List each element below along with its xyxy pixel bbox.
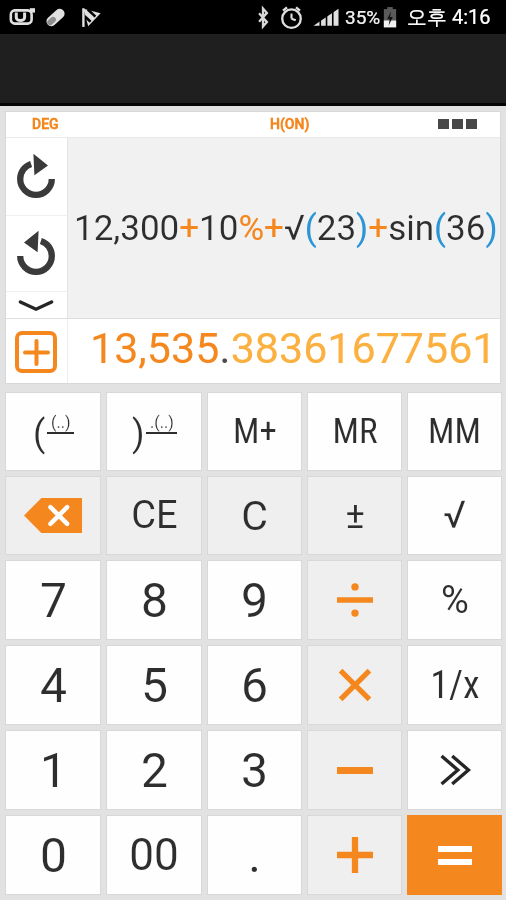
button[interactable]: CE	[106, 476, 202, 555]
button[interactable]: 3	[207, 730, 302, 810]
staticText: 35%	[345, 6, 381, 28]
button[interactable]	[307, 815, 402, 895]
staticText: 7	[40, 572, 67, 628]
staticText: 00	[129, 829, 179, 881]
button[interactable]: Undo	[5, 216, 67, 291]
button[interactable]: 1/x	[407, 645, 502, 725]
staticText: √	[443, 493, 466, 538]
staticText: %	[441, 578, 469, 623]
button[interactable]	[407, 730, 502, 810]
button[interactable]: 9	[207, 560, 302, 640]
button[interactable]: (	[5, 392, 101, 471]
button[interactable]: M+	[207, 392, 302, 471]
staticText: 5	[141, 657, 168, 713]
staticText: 8	[141, 572, 168, 628]
staticText: ±	[345, 495, 365, 537]
button[interactable]: MR	[307, 392, 402, 471]
staticText: 0	[40, 827, 67, 883]
button[interactable]: 00	[106, 815, 202, 895]
button[interactable]: .	[207, 815, 302, 895]
button[interactable]: Memory add	[5, 319, 67, 384]
staticText: )	[132, 413, 145, 455]
button[interactable]: MM	[407, 392, 502, 471]
staticText: 1	[40, 742, 67, 798]
button[interactable]: ±	[307, 476, 402, 555]
button[interactable]: √	[407, 476, 502, 555]
staticText: CE	[131, 493, 178, 538]
button[interactable]: 7	[5, 560, 101, 640]
staticText: (..)	[51, 413, 71, 432]
button[interactable]: Collapse	[5, 292, 67, 318]
staticText: 4	[40, 657, 67, 713]
button[interactable]: Redo	[5, 138, 67, 215]
staticText: MM	[428, 411, 481, 452]
staticText: 9	[241, 572, 268, 628]
staticText: 13,535.38361677561	[90, 323, 497, 373]
staticText: .	[248, 827, 261, 883]
staticText: H(ON)	[270, 116, 310, 132]
other: Backspace	[5, 476, 101, 555]
button[interactable]: %	[407, 560, 502, 640]
button[interactable]: )	[106, 392, 202, 471]
button[interactable]	[307, 730, 402, 810]
staticText: .(..)	[150, 413, 174, 432]
button[interactable]: 0	[5, 815, 101, 895]
button[interactable]: 8	[106, 560, 202, 640]
staticText: 12,300+10%+√(23)+sin(36)	[74, 208, 498, 249]
staticText: DEG	[32, 116, 59, 132]
staticText: 2	[141, 742, 168, 798]
button[interactable]: Backspace	[5, 476, 101, 555]
staticText: M+	[233, 411, 277, 452]
button[interactable]	[407, 815, 502, 895]
button[interactable]: C	[207, 476, 302, 555]
staticText: 6	[241, 657, 268, 713]
staticText: 1/x	[430, 663, 480, 708]
button[interactable]: 1	[5, 730, 101, 810]
staticText: 3	[241, 742, 268, 798]
button[interactable]: 6	[207, 645, 302, 725]
button[interactable]: 4	[5, 645, 101, 725]
button[interactable]	[307, 645, 402, 725]
staticText: C	[241, 492, 268, 540]
staticText: 오후 4:16	[407, 5, 491, 30]
button[interactable]: 2	[106, 730, 202, 810]
staticText: (	[33, 413, 46, 455]
button[interactable]	[307, 560, 402, 640]
button[interactable]: 5	[106, 645, 202, 725]
staticText: MR	[332, 411, 378, 452]
